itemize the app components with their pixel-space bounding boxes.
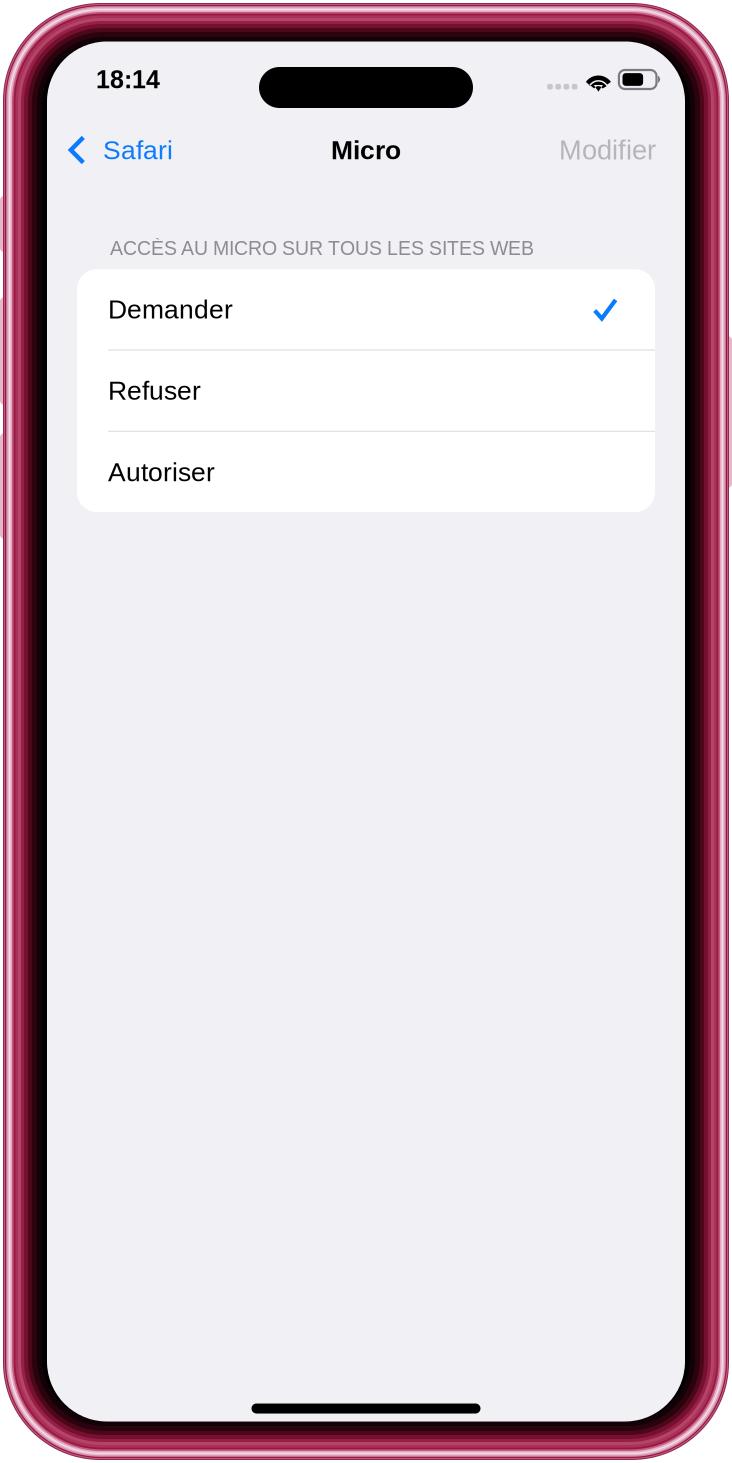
button[interactable]: Autoriser — [77, 432, 655, 512]
staticText: Autoriser — [108, 457, 215, 487]
button[interactable]: Refuser — [77, 351, 655, 431]
button[interactable]: Modifier — [559, 127, 685, 173]
staticText: ACCÈS AU MICRO SUR TOUS LES SITES WEB — [110, 237, 534, 259]
staticText: Refuser — [108, 376, 201, 405]
staticText: Modifier — [559, 135, 656, 165]
button[interactable]: Demander — [77, 269, 655, 349]
staticText: 18:14 — [96, 66, 160, 93]
staticText: Micro — [331, 135, 401, 165]
button[interactable]: Safari — [47, 127, 173, 173]
staticText: Safari — [103, 135, 173, 165]
staticText: Demander — [108, 294, 233, 324]
